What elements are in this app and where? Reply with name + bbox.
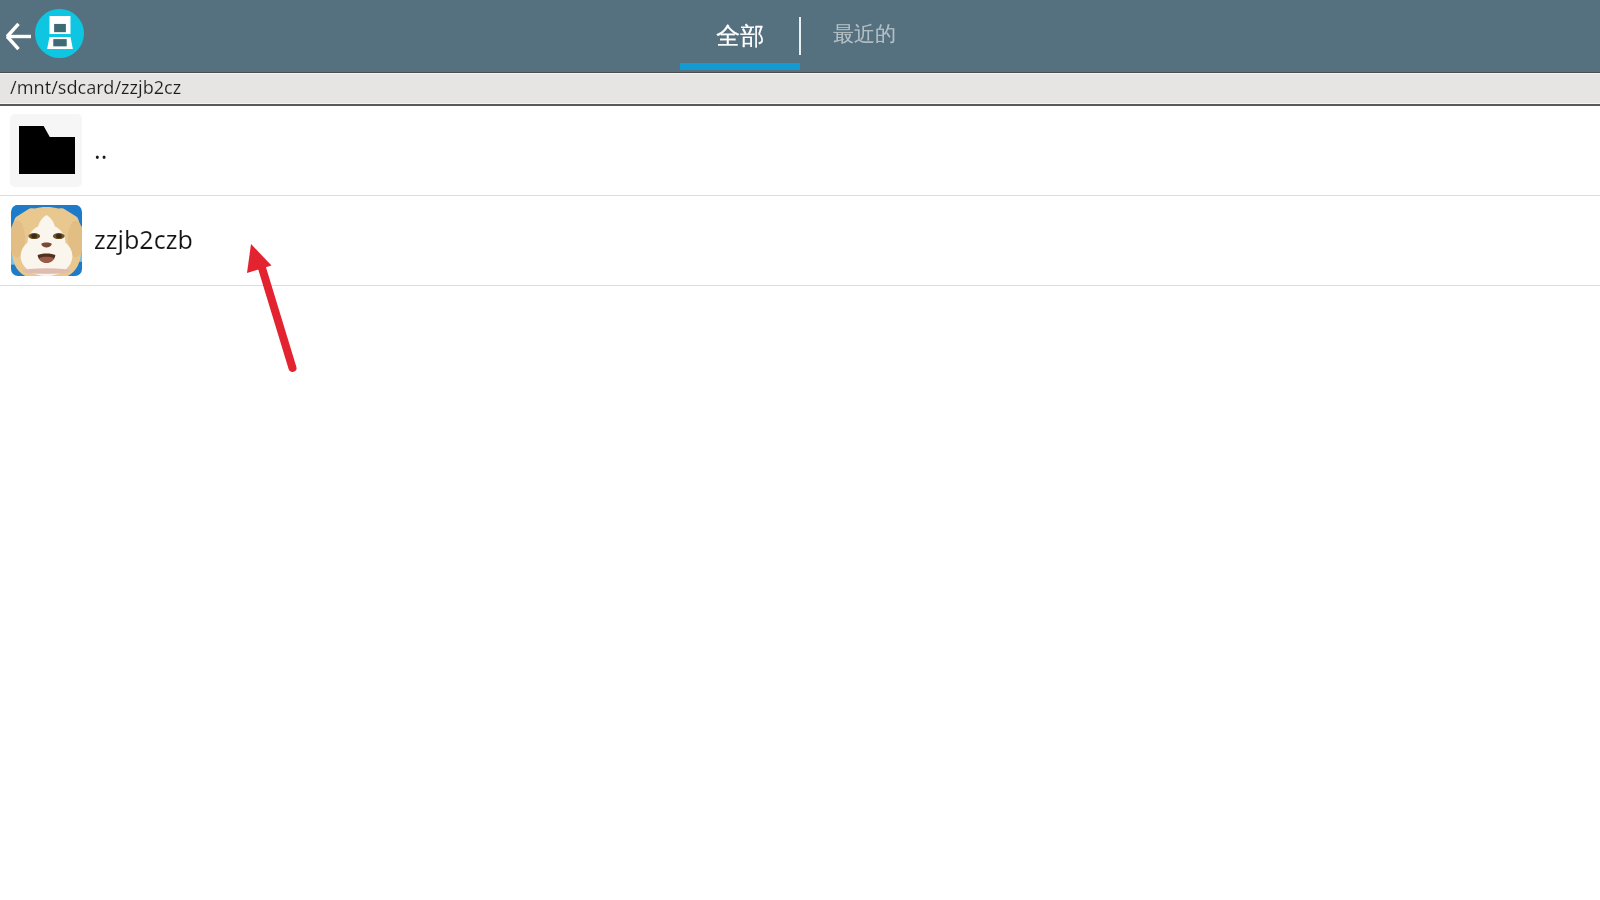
button[interactable]: App icon bbox=[35, 9, 84, 58]
button[interactable]: Back bbox=[0, 12, 42, 60]
button[interactable]: 最近的 bbox=[800, 0, 920, 72]
staticText: .. bbox=[94, 132, 108, 166]
staticText: /mnt/sdcard/zzjb2cz bbox=[10, 75, 182, 100]
staticText: 全部 bbox=[716, 21, 764, 51]
button[interactable]: 全部 bbox=[680, 0, 800, 72]
button[interactable]: .. bbox=[0, 106, 1600, 195]
staticText: 最近的 bbox=[833, 21, 896, 47]
staticText: zzjb2czb bbox=[94, 222, 193, 256]
button[interactable]: zzjb2czb bbox=[0, 196, 1600, 285]
